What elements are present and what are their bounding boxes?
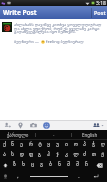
button[interactable]: ნ [55, 160, 64, 170]
staticText: ი [65, 142, 68, 148]
staticText: გ [38, 152, 41, 158]
staticText: ე [20, 142, 23, 148]
staticText: ძ [83, 152, 86, 158]
button[interactable]: ხ [19, 160, 28, 170]
staticText: ქართული [7, 133, 29, 138]
staticText: ა [3, 152, 6, 158]
staticText: ჩ [85, 162, 88, 168]
staticText: ხ [22, 162, 25, 168]
staticText: ნ [58, 162, 61, 168]
button[interactable]: ჯ [53, 150, 62, 160]
button[interactable]: Shift [0, 160, 10, 170]
staticText: პ [83, 142, 86, 148]
staticText: მ [67, 162, 70, 168]
button[interactable]: Write Post [0, 6, 37, 19]
staticText: ზ [13, 162, 16, 168]
button[interactable]: Tag people [3, 121, 12, 130]
button[interactable]: English [72, 130, 107, 140]
button[interactable]: Check in [16, 121, 25, 130]
staticText: ც [31, 162, 34, 168]
staticText: English [82, 132, 98, 138]
staticText: კ [65, 152, 68, 158]
button[interactable]: თ [89, 150, 98, 160]
staticText: ვ [40, 162, 43, 168]
staticText: ქ [3, 142, 6, 148]
button[interactable]: ი [62, 140, 71, 150]
button[interactable]: ჟ [98, 150, 107, 160]
staticText: დ [20, 152, 24, 158]
button[interactable]: ლ [71, 150, 80, 160]
button[interactable]: ძ [80, 150, 89, 160]
button[interactable]: ქ [0, 140, 8, 150]
button[interactable]: Post [92, 6, 107, 19]
button[interactable]: რ [26, 140, 35, 150]
staticText: ს [11, 152, 14, 158]
staticText: - [53, 132, 55, 138]
staticText: ლ [73, 152, 79, 158]
staticText: რ [29, 142, 33, 148]
staticText: წ [11, 142, 14, 148]
button[interactable]: მ [64, 160, 73, 170]
button[interactable]: ა [0, 150, 8, 160]
staticText: ბ [49, 162, 52, 168]
staticText: Write Post [3, 8, 37, 17]
button[interactable]: ც [28, 160, 37, 170]
staticText: ჟ [101, 152, 104, 158]
staticText: ტ [38, 142, 42, 148]
staticText: feeling ბედნიერად [46, 39, 84, 45]
staticText: ჯ [56, 152, 59, 158]
button[interactable]: ე [17, 140, 26, 150]
button[interactable]: ღ [98, 140, 107, 150]
button[interactable]: Audience selector [93, 120, 107, 130]
staticText: უ [56, 142, 59, 148]
button[interactable]: Symbols [0, 170, 11, 182]
staticText: , [17, 173, 19, 180]
staticText: ბედნიერი — [14, 39, 41, 45]
button[interactable]: ჩ [82, 160, 91, 170]
button[interactable]: პ [80, 140, 89, 150]
staticText: ახლახანს დავიწყე კითხვა ყოველდღიურად და … [14, 22, 104, 34]
button[interactable]: ყ [44, 140, 53, 150]
staticText: ჭ [92, 142, 95, 148]
button[interactable]: ფ [26, 150, 35, 160]
button[interactable]: Space [25, 170, 72, 182]
button[interactable]: ვ [37, 160, 46, 170]
staticText: ღ [101, 142, 105, 148]
button[interactable]: , [11, 170, 25, 182]
staticText: თ [92, 152, 96, 158]
button[interactable]: კ [62, 150, 71, 160]
staticText: შ [76, 162, 79, 168]
button[interactable]: Profile picture [2, 22, 12, 32]
button[interactable]: წ [8, 140, 17, 150]
button[interactable]: Backspace [91, 160, 107, 170]
button[interactable]: გ [35, 150, 44, 160]
button[interactable]: . [72, 170, 85, 182]
button[interactable]: ო [71, 140, 80, 150]
button[interactable]: დ [17, 150, 26, 160]
staticText: ფ [29, 152, 33, 158]
button[interactable]: ქართული [0, 130, 35, 140]
button[interactable]: ზ [10, 160, 19, 170]
button[interactable]: შ [73, 160, 82, 170]
button[interactable]: Enter [85, 170, 107, 182]
button[interactable]: Feeling [42, 121, 51, 130]
staticText: ო [74, 142, 78, 148]
button[interactable]: ს [8, 150, 17, 160]
button[interactable]: ჭ [89, 140, 98, 150]
staticText: ყ [47, 142, 50, 148]
staticText: 3:18 [96, 0, 106, 6]
staticText: Post [94, 9, 106, 16]
button[interactable]: უ [53, 140, 62, 150]
button[interactable]: Photo [29, 121, 38, 130]
button[interactable]: ტ [35, 140, 44, 150]
button[interactable]: - [36, 130, 71, 140]
staticText: . [78, 173, 80, 180]
staticText: ჰ [47, 152, 50, 158]
button[interactable]: ბ [46, 160, 55, 170]
button[interactable]: ჰ [44, 150, 53, 160]
